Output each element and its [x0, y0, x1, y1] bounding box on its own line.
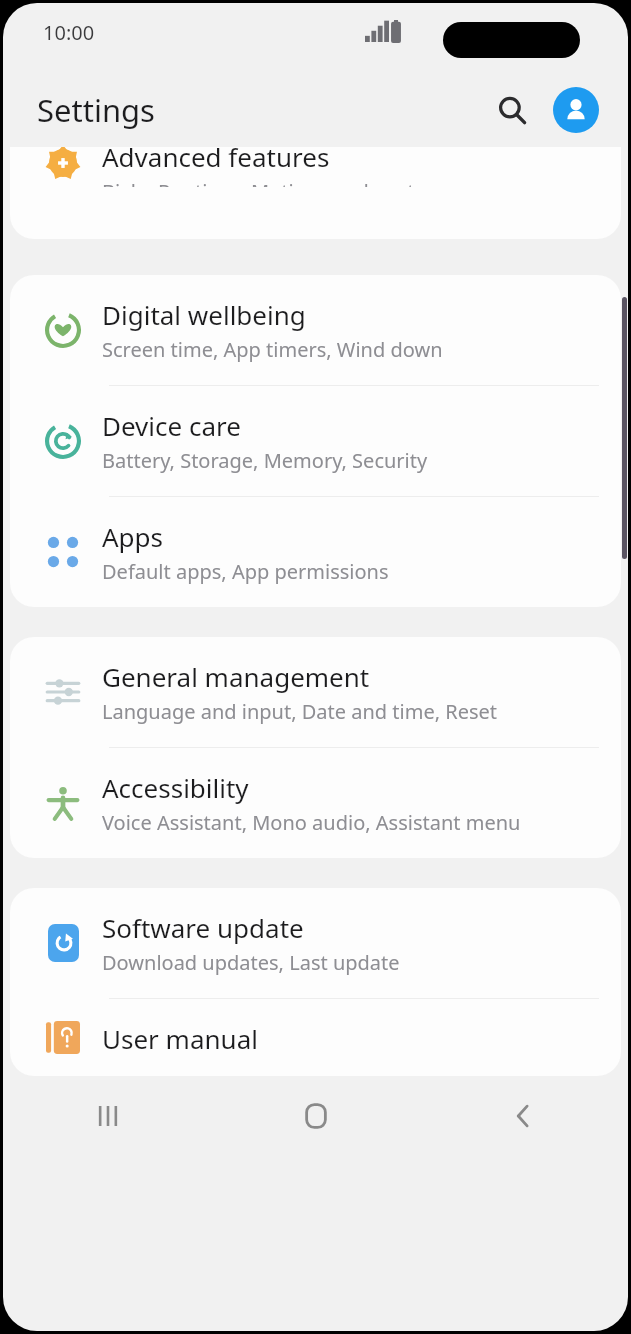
button[interactable]: Search — [488, 86, 536, 134]
staticText: Screen time, App timers, Wind down — [102, 336, 443, 363]
staticText: Advanced features — [102, 147, 330, 174]
staticText: Settings — [37, 89, 155, 131]
staticText: Battery, Storage, Memory, Security — [102, 447, 428, 474]
button[interactable]: Device care — [10, 386, 621, 496]
staticText: Bixby Routines, Motions and gestures, On… — [102, 178, 461, 187]
button[interactable]: User manual — [10, 999, 621, 1076]
staticText: Default apps, App permissions — [102, 558, 389, 585]
button[interactable]: Recent apps — [3, 1076, 212, 1155]
staticText: Voice Assistant, Mono audio, Assistant m… — [102, 809, 521, 836]
staticText: Language and input, Date and time, Reset — [102, 698, 498, 725]
button[interactable]: Digital wellbeing — [10, 275, 621, 385]
staticText: Download updates, Last update — [102, 949, 400, 976]
button[interactable]: Home — [212, 1076, 420, 1155]
button[interactable]: Advanced features — [10, 147, 621, 209]
staticText: Device care — [102, 408, 241, 443]
button[interactable]: Account — [553, 87, 599, 133]
staticText: User manual — [102, 1021, 258, 1054]
staticText: Apps — [102, 519, 164, 554]
button[interactable]: Accessibility — [10, 748, 621, 858]
button[interactable]: Back — [420, 1076, 628, 1155]
staticText: Digital wellbeing — [102, 297, 306, 332]
button[interactable]: Apps — [10, 497, 621, 607]
staticText: Accessibility — [102, 770, 249, 805]
button[interactable]: General management — [10, 637, 621, 747]
button[interactable]: Software update — [10, 888, 621, 998]
staticText: General management — [102, 659, 370, 694]
staticText: 10:00 — [43, 19, 95, 46]
staticText: Software update — [102, 910, 304, 945]
